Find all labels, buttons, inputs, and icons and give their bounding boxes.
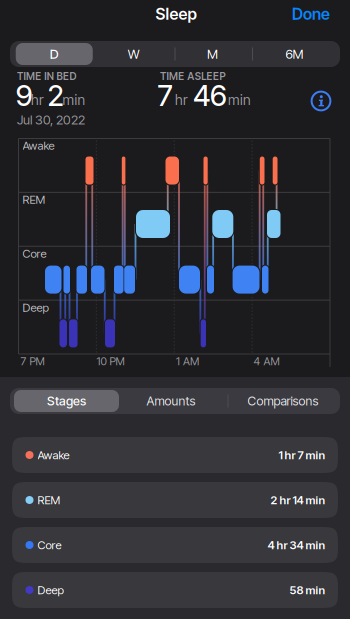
staticText: Deep	[22, 300, 48, 314]
staticText: TIME IN BED	[17, 70, 76, 82]
staticText: Sleep	[155, 4, 196, 24]
staticText: Comparisons	[247, 393, 318, 408]
button[interactable]: D	[13, 41, 95, 67]
staticText: Awake	[37, 448, 69, 462]
staticText: Core	[22, 246, 46, 260]
staticText: 6M	[285, 46, 303, 62]
staticText: hr	[175, 91, 188, 108]
staticText: 10 PM	[96, 354, 124, 368]
staticText: Stages	[47, 393, 86, 408]
staticText: 7	[157, 78, 172, 113]
button[interactable]: Awake	[12, 437, 338, 473]
staticText: Core	[37, 538, 61, 552]
staticText: M	[207, 46, 218, 62]
staticText: REM	[37, 493, 60, 507]
button[interactable]: 6M	[257, 41, 340, 67]
staticText: W	[128, 46, 140, 62]
button[interactable]: Deep	[12, 572, 338, 608]
staticText: hr	[31, 91, 44, 108]
staticText: 1 AM	[176, 354, 199, 368]
button[interactable]: M	[175, 41, 257, 67]
staticText: 9	[16, 78, 33, 113]
staticText: 46	[193, 78, 227, 113]
staticText: Awake	[22, 138, 54, 152]
button[interactable]: Amounts	[120, 388, 230, 414]
staticText: 1 hr 7 min	[278, 448, 325, 462]
staticText: min	[62, 91, 85, 108]
button[interactable]: REM	[12, 482, 338, 518]
staticText: 7 PM	[20, 354, 44, 368]
button[interactable]: More info	[310, 90, 331, 111]
staticText: 4 hr 34 min	[267, 538, 325, 552]
staticText: 2	[47, 78, 63, 113]
staticText: min	[228, 91, 251, 108]
staticText: 2 hr 14 min	[270, 493, 325, 507]
staticText: Deep	[37, 583, 63, 597]
staticText: REM	[22, 192, 45, 206]
button[interactable]: Core	[12, 527, 338, 563]
button[interactable]: Comparisons	[230, 388, 340, 414]
button[interactable]: W	[92, 41, 175, 67]
staticText: D	[50, 46, 59, 62]
button[interactable]: Stages	[11, 388, 121, 414]
button[interactable]: Done	[292, 4, 330, 24]
staticText: TIME ASLEEP	[160, 70, 225, 82]
staticText: 58 min	[289, 583, 325, 597]
staticText: Jul 30, 2022	[17, 112, 85, 128]
staticText: Done	[292, 4, 330, 24]
staticText: 4 AM	[253, 354, 279, 368]
staticText: Amounts	[146, 393, 195, 408]
